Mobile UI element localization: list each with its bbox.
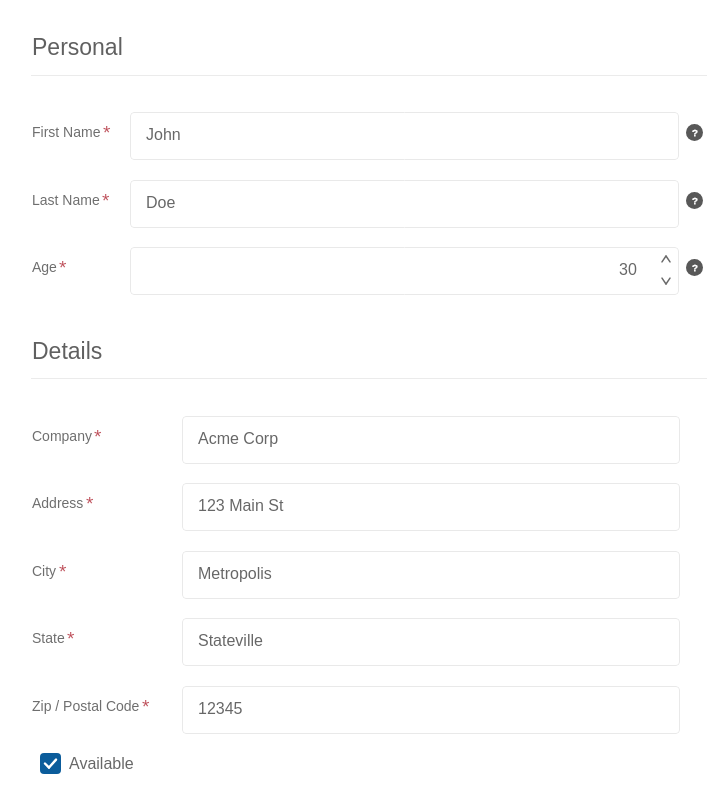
button[interactable]: Available: [40, 753, 134, 774]
staticText: John: [146, 126, 181, 144]
staticText: *: [142, 696, 150, 717]
staticText: Acme Corp: [198, 430, 279, 448]
staticText: ?: [692, 262, 698, 273]
staticText: Last Name: [32, 192, 100, 208]
staticText: Doe: [146, 194, 176, 212]
staticText: First Name: [32, 124, 101, 140]
button[interactable]: Metropolis: [182, 551, 680, 599]
staticText: ?: [692, 127, 698, 138]
staticText: Zip / Postal Code: [32, 698, 140, 714]
button[interactable]: 123 Main St: [182, 483, 680, 531]
staticText: *: [59, 561, 67, 582]
staticText: Personal: [32, 34, 123, 60]
staticText: *: [59, 257, 67, 278]
staticText: 30: [619, 261, 637, 279]
button[interactable]: Help for Last Name: [686, 192, 703, 209]
staticText: Available: [69, 755, 134, 773]
staticText: Age: [32, 259, 57, 275]
button[interactable]: Acme Corp: [182, 416, 680, 464]
button[interactable]: Stateville: [182, 618, 680, 666]
staticText: Details: [32, 338, 103, 364]
staticText: *: [94, 426, 102, 447]
button[interactable]: 12345: [182, 686, 680, 734]
button[interactable]: 30: [130, 247, 679, 295]
staticText: *: [103, 122, 111, 143]
staticText: City: [32, 563, 57, 579]
button[interactable]: John: [130, 112, 679, 160]
staticText: *: [102, 190, 110, 211]
staticText: State: [32, 630, 65, 646]
button[interactable]: Help for First Name: [686, 124, 703, 141]
staticText: Metropolis: [198, 565, 272, 583]
staticText: 123 Main St: [198, 497, 284, 515]
staticText: 12345: [198, 700, 243, 718]
button[interactable]: Help for Age: [686, 259, 703, 276]
staticText: Address: [32, 495, 84, 511]
staticText: ?: [692, 195, 698, 206]
staticText: Stateville: [198, 632, 263, 650]
staticText: *: [67, 628, 75, 649]
staticText: Company: [32, 428, 92, 444]
button[interactable]: Doe: [130, 180, 679, 228]
staticText: *: [86, 493, 94, 514]
